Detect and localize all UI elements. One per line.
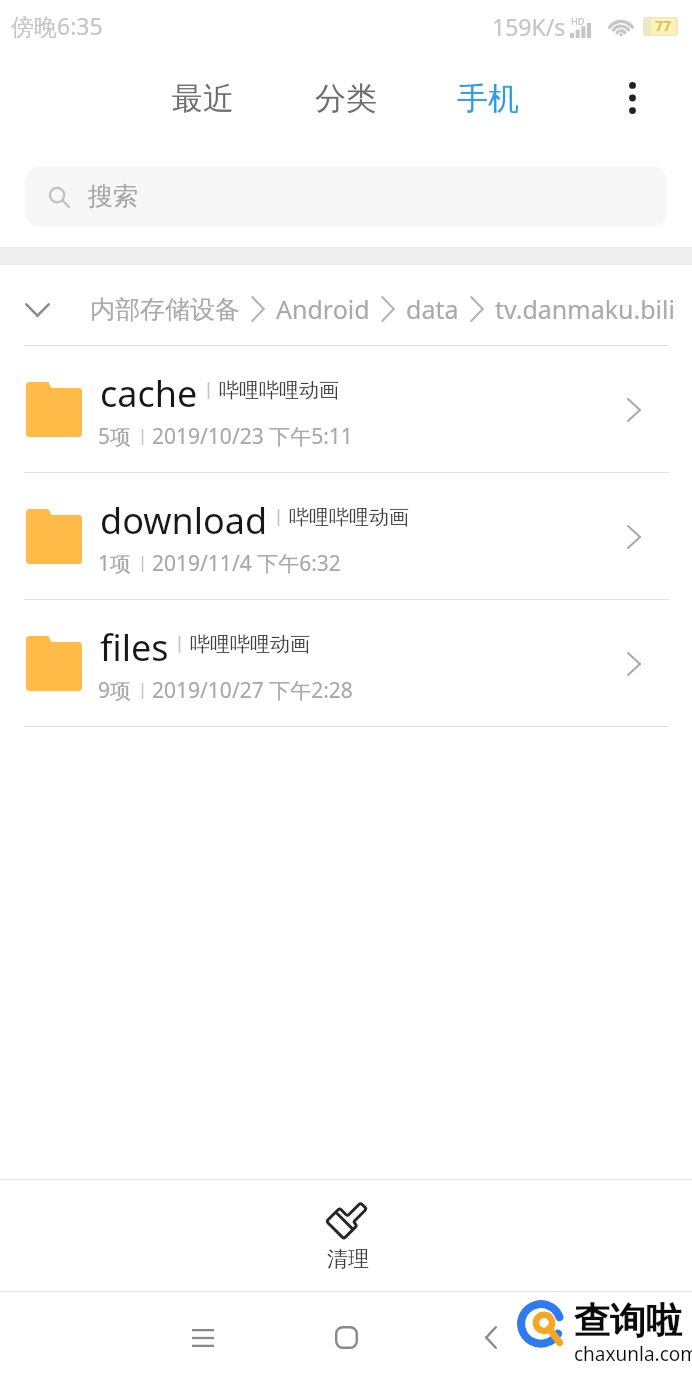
staticText: 9项 <box>98 676 132 705</box>
button[interactable]: Back <box>445 1291 537 1384</box>
staticText: 1项 <box>98 549 132 578</box>
staticText: 77 <box>655 16 672 35</box>
staticText: 2019/11/4 下午6:32 <box>152 549 341 578</box>
button[interactable]: Recents <box>157 1291 249 1384</box>
staticText: 内部存储设备 <box>90 294 240 325</box>
staticText: 2019/10/27 下午2:28 <box>152 676 353 705</box>
staticText: download <box>100 496 268 545</box>
staticText: Android <box>276 292 370 326</box>
staticText: 搜索 <box>88 181 138 212</box>
staticText: 分类 <box>315 79 377 118</box>
button[interactable]: download <box>0 473 692 600</box>
staticText: 手机 <box>457 79 519 118</box>
staticText: 傍晚6:35 <box>11 10 103 41</box>
staticText: chaxunla.com <box>574 1341 692 1367</box>
button[interactable]: 清理 <box>321 1192 375 1272</box>
staticText: data <box>406 292 459 326</box>
button[interactable]: files <box>0 600 692 727</box>
staticText: 159K/s <box>492 11 566 42</box>
staticText: tv.danmaku.bili <box>495 292 675 326</box>
button[interactable]: 最近 <box>143 54 263 142</box>
staticText: 哔哩哔哩动画 <box>289 505 409 530</box>
staticText: 最近 <box>172 79 234 118</box>
staticText: 哔哩哔哩动画 <box>219 378 339 403</box>
button[interactable]: Home <box>300 1291 392 1384</box>
staticText: 清理 <box>327 1246 369 1272</box>
button[interactable]: 手机 <box>428 54 548 142</box>
button[interactable]: cache <box>0 346 692 473</box>
button[interactable]: 分类 <box>286 54 406 142</box>
staticText: 2019/10/23 下午5:11 <box>152 422 353 451</box>
staticText: files <box>100 623 169 672</box>
button[interactable]: More options <box>600 54 664 142</box>
staticText: 5项 <box>98 422 132 451</box>
staticText: 查询啦 <box>574 1298 682 1343</box>
staticText: 哔哩哔哩动画 <box>190 632 310 657</box>
button[interactable]: 搜索 <box>25 166 667 227</box>
staticText: cache <box>100 369 198 418</box>
staticText: HD <box>571 15 585 27</box>
button[interactable]: 内部存储设备 <box>0 265 692 346</box>
